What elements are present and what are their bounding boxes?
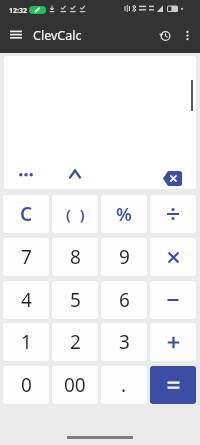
button[interactable]: %: [101, 195, 147, 233]
staticText: .: [121, 372, 127, 398]
button[interactable]: 4: [3, 281, 49, 319]
button[interactable]: .: [101, 366, 147, 404]
button[interactable]: [160, 168, 185, 189]
button[interactable]: [150, 323, 196, 361]
button[interactable]: [150, 281, 196, 319]
staticText: 0: [21, 372, 32, 398]
staticText: 5: [70, 287, 81, 313]
button[interactable]: 0: [3, 366, 49, 404]
staticText: ( ): [66, 204, 85, 224]
staticText: C: [20, 201, 33, 227]
button[interactable]: 6: [101, 281, 147, 319]
staticText: 1: [21, 329, 32, 355]
button[interactable]: 00: [52, 366, 98, 404]
button[interactable]: 8: [52, 238, 98, 276]
staticText: 6: [119, 287, 130, 313]
button[interactable]: C: [3, 195, 49, 233]
button[interactable]: 5: [52, 281, 98, 319]
button[interactable]: [8, 28, 24, 42]
staticText: 7: [21, 244, 32, 270]
button[interactable]: [150, 195, 196, 233]
button[interactable]: 3: [101, 323, 147, 361]
button[interactable]: ( ): [52, 195, 98, 233]
staticText: 8: [70, 244, 81, 270]
button[interactable]: 1: [3, 323, 49, 361]
button[interactable]: [150, 366, 196, 404]
staticText: %: [116, 202, 132, 227]
button[interactable]: [150, 238, 196, 276]
button[interactable]: [12, 165, 40, 185]
button[interactable]: [157, 27, 174, 44]
button[interactable]: [65, 164, 85, 184]
staticText: 4: [21, 287, 32, 313]
button[interactable]: 9: [101, 238, 147, 276]
staticText: 2: [70, 329, 81, 355]
staticText: 3: [119, 329, 130, 355]
staticText: ClevCalc: [33, 27, 82, 44]
button[interactable]: 2: [52, 323, 98, 361]
staticText: 00: [64, 372, 86, 398]
staticText: 12:32: [9, 6, 27, 16]
staticText: 9: [119, 244, 130, 270]
button[interactable]: [181, 27, 195, 44]
button[interactable]: 7: [3, 238, 49, 276]
